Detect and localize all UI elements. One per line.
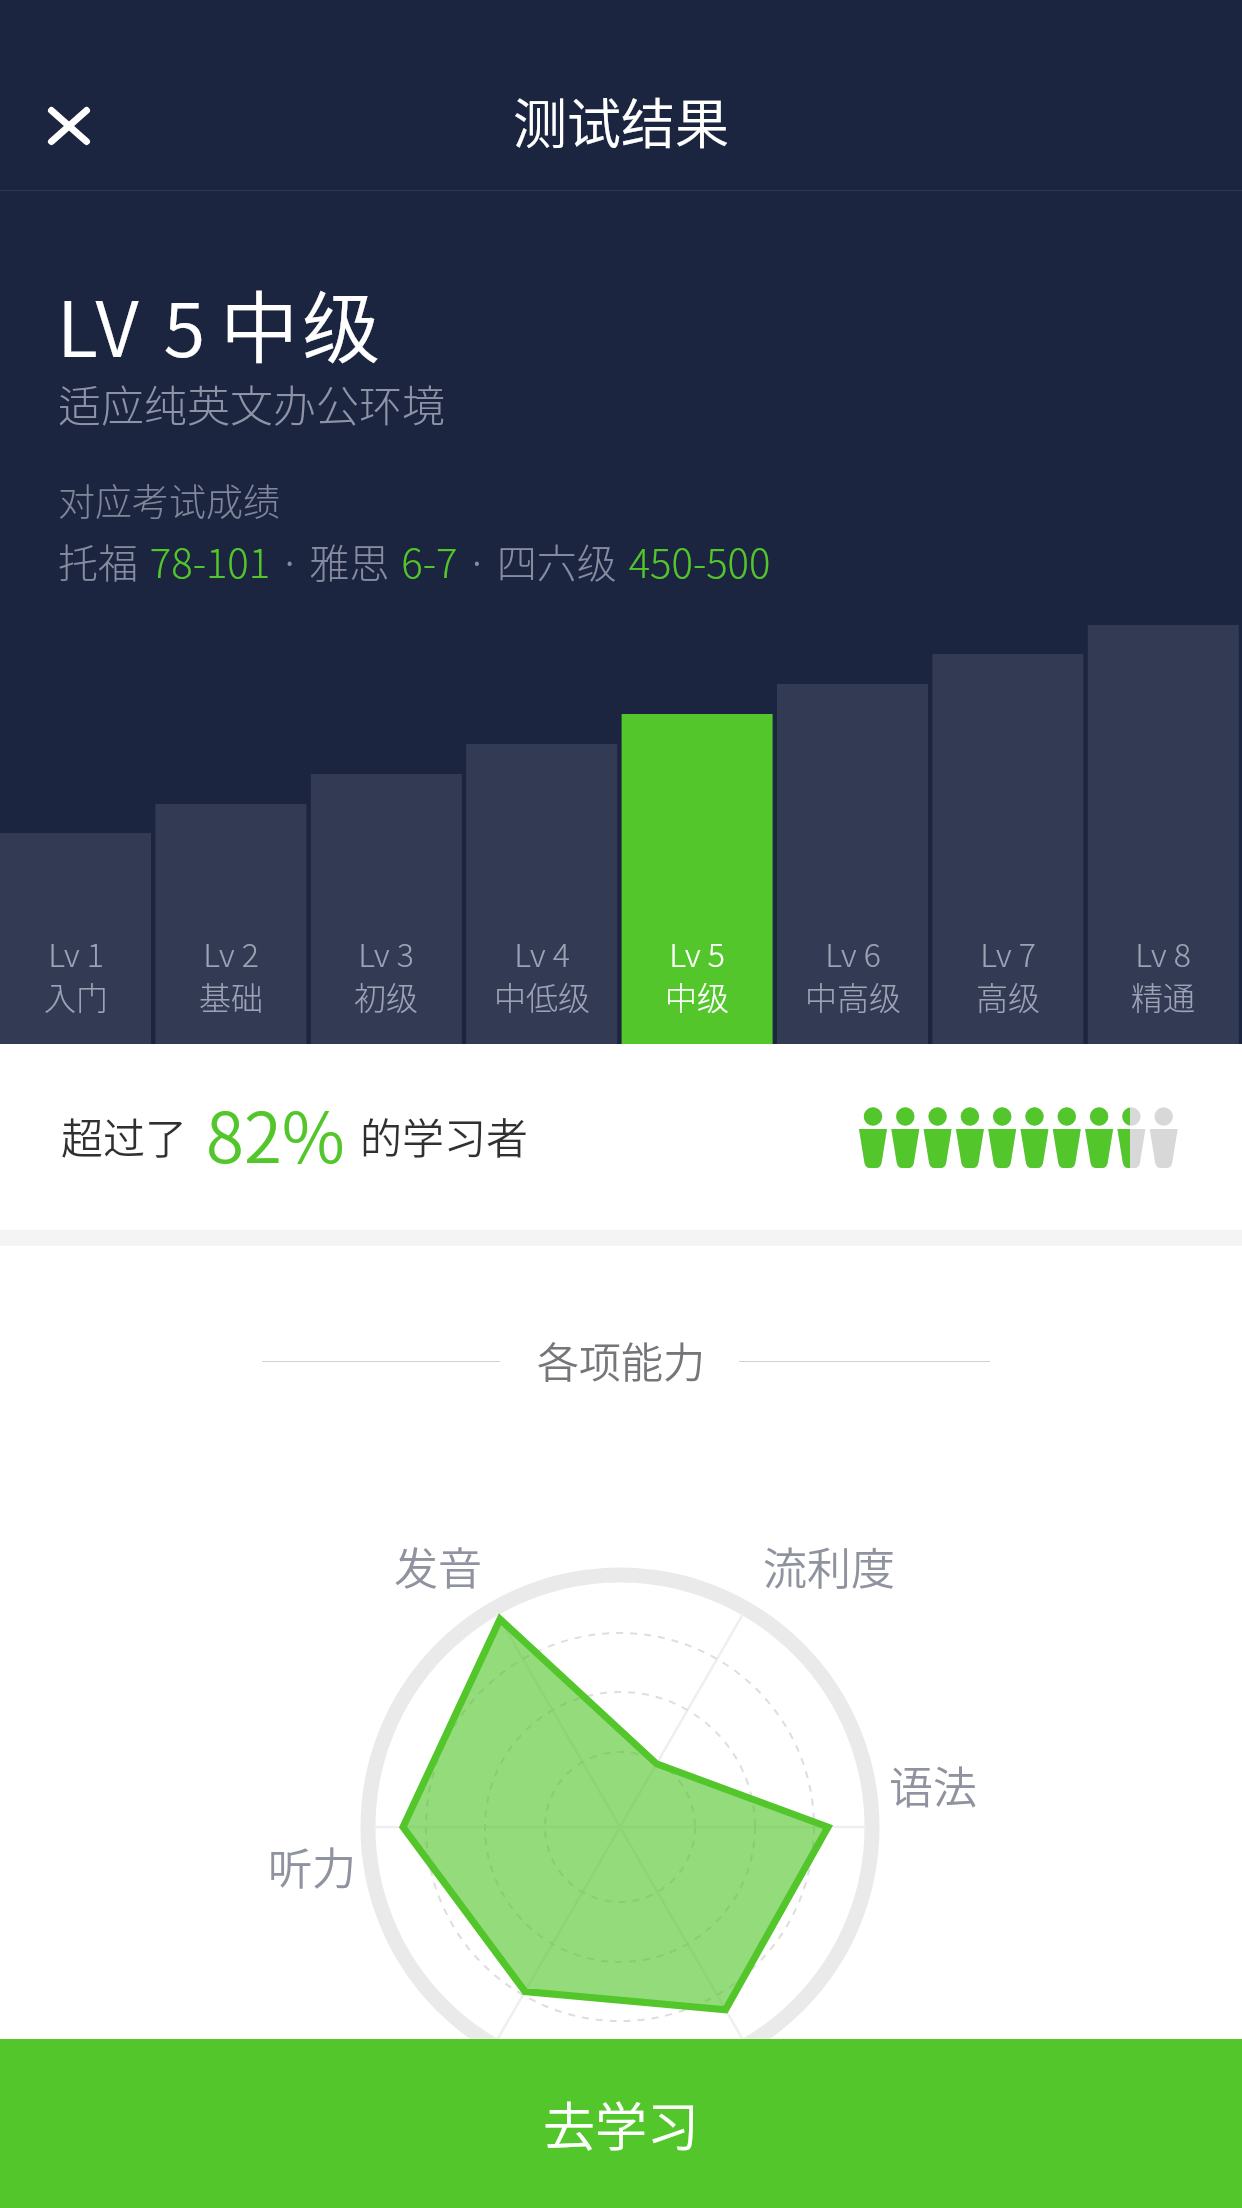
staticText: 流利度	[763, 1534, 895, 1598]
staticText: 基础	[151, 973, 311, 1019]
staticText: 听力	[268, 1834, 356, 1898]
staticText: 的学习者	[360, 1105, 529, 1166]
staticText: 发音	[394, 1534, 482, 1598]
staticText: 对应考试成绩	[58, 473, 280, 527]
staticText: 初级	[306, 973, 466, 1019]
staticText: Lv 8	[1083, 930, 1242, 976]
staticText: Lv 5	[617, 930, 777, 976]
staticText: LV 5 中级	[57, 267, 385, 380]
staticText: Lv 6	[773, 930, 933, 976]
button[interactable]	[1088, 625, 1239, 1044]
staticText: 中级	[617, 973, 777, 1019]
staticText: 去学习	[543, 2086, 700, 2161]
button[interactable]	[777, 684, 928, 1044]
staticText: 中低级	[462, 973, 622, 1019]
staticText: Lv 4	[462, 930, 622, 976]
staticText: 精通	[1083, 973, 1242, 1019]
button[interactable]	[932, 654, 1083, 1044]
button[interactable]	[622, 714, 773, 1044]
button[interactable]: Close	[29, 86, 109, 166]
staticText: 超过了	[61, 1105, 188, 1166]
staticText: 高级	[928, 973, 1088, 1019]
button[interactable]	[466, 744, 617, 1044]
staticText: 适应纯英文办公环境	[58, 372, 445, 434]
staticText: 托福 78-101 · 雅思 6-7 · 四六级 450-500	[58, 532, 771, 590]
staticText: Lv 7	[928, 930, 1088, 976]
staticText: Lv 1	[0, 930, 156, 976]
staticText: Lv 2	[151, 930, 311, 976]
staticText: 各项能力	[500, 1329, 742, 1390]
staticText: Lv 3	[306, 930, 466, 976]
button[interactable]	[0, 833, 151, 1044]
staticText: 语法	[889, 1753, 977, 1817]
staticText: 测试结果	[0, 81, 1242, 159]
staticText: 82%	[206, 1083, 345, 1183]
button[interactable]	[311, 774, 462, 1044]
button[interactable]: 去学习	[0, 2039, 1242, 2208]
button[interactable]	[155, 804, 306, 1044]
staticText: 入门	[0, 973, 156, 1019]
staticText: 中高级	[773, 973, 933, 1019]
